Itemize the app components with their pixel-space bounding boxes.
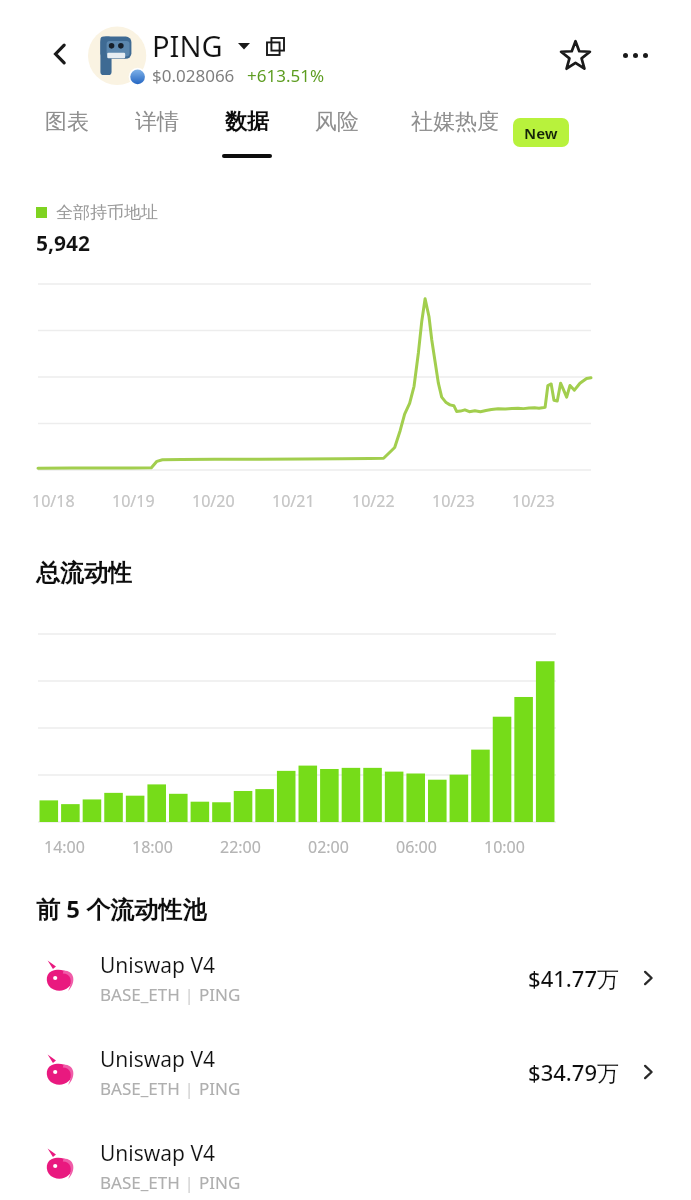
staticText: PING (199, 983, 241, 1006)
staticText: 10/21 (272, 490, 315, 512)
staticText: 全部持币地址 (56, 202, 158, 223)
staticText: | (180, 1077, 199, 1100)
staticText: $34.79万 (528, 1057, 619, 1087)
button[interactable]: Copy address (261, 32, 289, 60)
staticText: | (180, 1171, 199, 1194)
staticText: 22:00 (220, 836, 261, 858)
button[interactable]: 数据 (216, 108, 278, 168)
button[interactable]: Uniswap V4 (0, 1135, 691, 1197)
staticText: 02:00 (308, 836, 349, 858)
staticText: BASE_ETH (100, 1077, 180, 1100)
staticText: 10:00 (484, 836, 525, 858)
staticText: 前 5 个流动性池 (36, 892, 207, 925)
staticText: 10/18 (32, 490, 75, 512)
staticText: 数据 (225, 108, 269, 136)
staticText: Uniswap V4 (100, 1045, 216, 1074)
staticText: $41.77万 (528, 963, 619, 993)
staticText: BASE_ETH (100, 1171, 180, 1194)
staticText: BASE_ETH (100, 983, 180, 1006)
button[interactable]: Uniswap V4 (0, 1041, 691, 1103)
staticText: 10/20 (192, 490, 235, 512)
button[interactable]: 详情 (126, 108, 188, 168)
staticText: 详情 (135, 108, 179, 136)
staticText: PING (199, 1171, 241, 1194)
button[interactable]: 风险 (306, 108, 368, 168)
button[interactable]: New (513, 118, 569, 147)
staticText: $0.028066 (152, 64, 235, 87)
staticText: New (524, 123, 558, 143)
staticText: 10/23 (512, 490, 555, 512)
button[interactable]: Uniswap V4 (0, 947, 691, 1009)
staticText: 18:00 (132, 836, 173, 858)
staticText: Uniswap V4 (100, 951, 216, 980)
staticText: 图表 (45, 108, 89, 136)
button[interactable]: Favorite (552, 32, 598, 78)
button[interactable]: 图表 (36, 108, 98, 168)
staticText: 5,942 (36, 229, 91, 258)
button[interactable]: More options (612, 32, 658, 78)
staticText: PING (152, 26, 223, 65)
staticText: 风险 (315, 108, 359, 136)
button[interactable]: Select token (233, 35, 255, 57)
staticText: Uniswap V4 (100, 1139, 216, 1168)
staticText: +613.51% (247, 64, 325, 87)
staticText: 10/19 (112, 490, 155, 512)
staticText: 14:00 (44, 836, 85, 858)
button[interactable]: 社媒热度 (396, 108, 514, 168)
staticText: 总流动性 (36, 558, 132, 588)
staticText: 06:00 (396, 836, 437, 858)
staticText: | (180, 983, 199, 1006)
button[interactable]: Back (40, 34, 80, 74)
staticText: 10/23 (432, 490, 475, 512)
staticText: 10/22 (352, 490, 395, 512)
staticText: 社媒热度 (411, 108, 499, 136)
staticText: PING (199, 1077, 241, 1100)
